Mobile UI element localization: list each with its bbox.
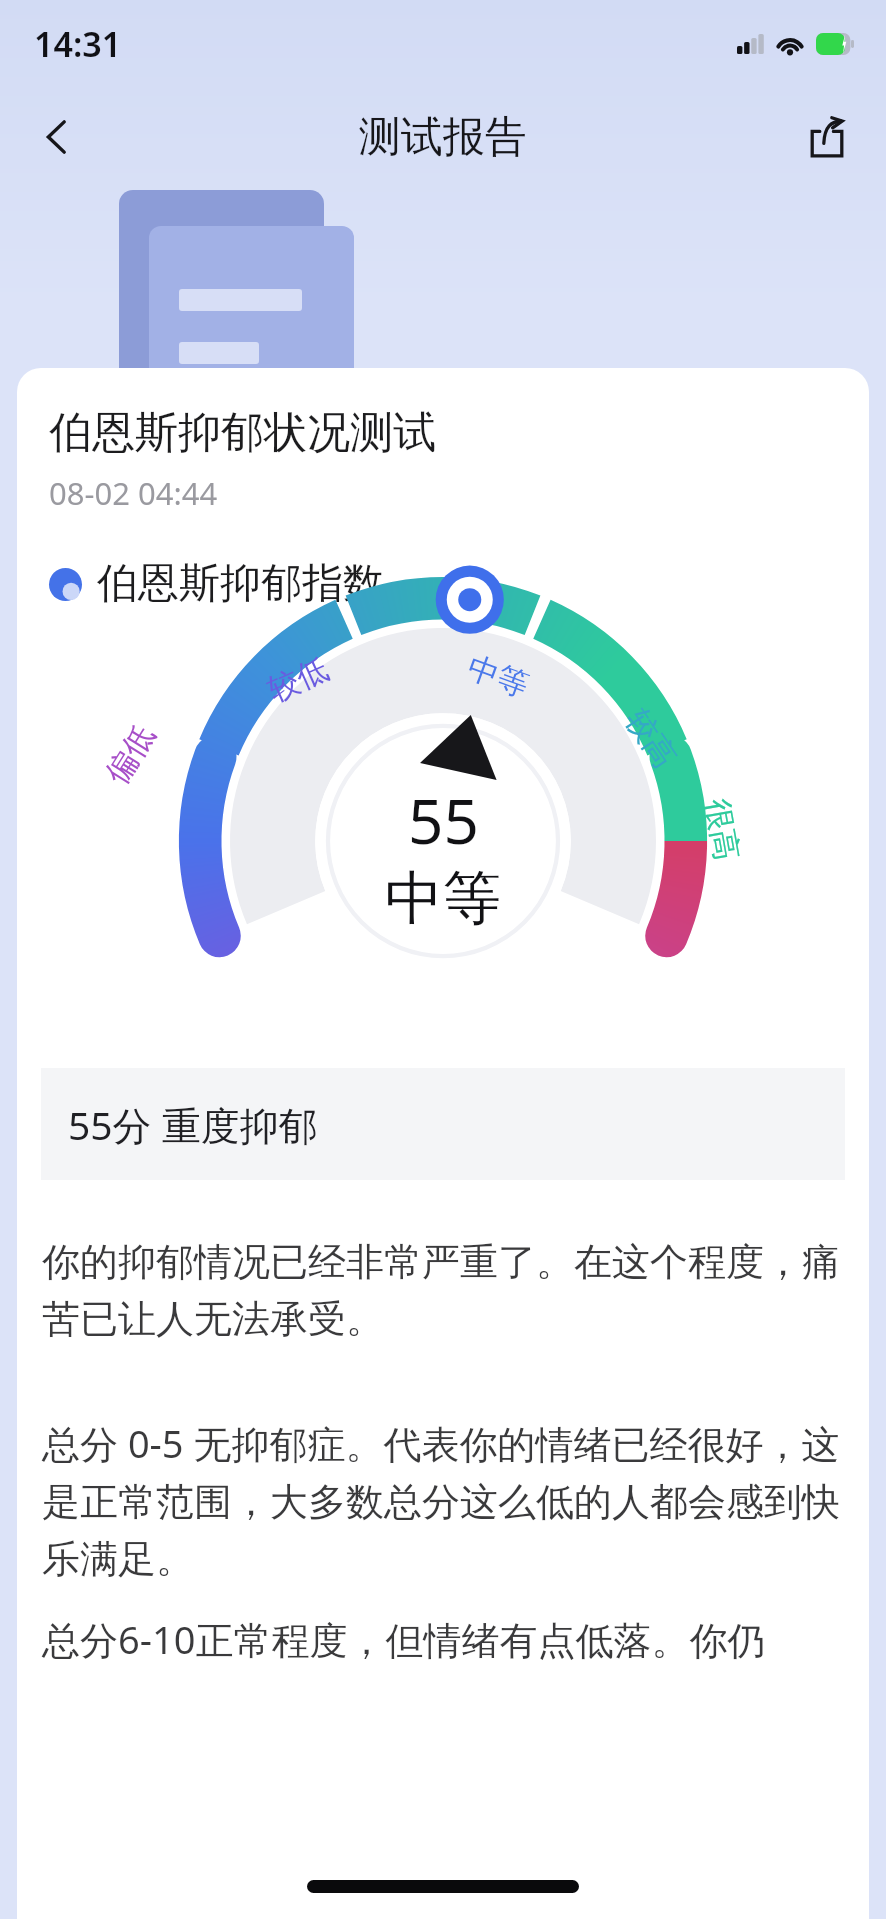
staticText: 很高 bbox=[697, 796, 747, 863]
staticText: 55分 重度抑郁 bbox=[68, 1098, 318, 1151]
staticText: 较高 bbox=[617, 702, 684, 775]
staticText: 较低 bbox=[262, 649, 334, 710]
staticText: 偏低 bbox=[97, 718, 163, 791]
staticText: 中等 bbox=[385, 862, 501, 935]
staticText: 55 bbox=[408, 778, 479, 862]
staticText: 总分 0-5 无抑郁症。代表你的情绪已经很好，这是正常范围，大多数总分这么低的人… bbox=[42, 1417, 844, 1583]
staticText: 测试报告 bbox=[359, 111, 527, 164]
staticText: 你的抑郁情况已经非常严重了。在这个程度，痛苦已让人无法承受。 bbox=[42, 1238, 844, 1343]
button[interactable]: Back bbox=[20, 100, 94, 174]
staticText: 总分6-10正常程度，但情绪有点低落。你仍 bbox=[42, 1613, 766, 1665]
button[interactable]: Share bbox=[790, 100, 864, 174]
staticText: 中等 bbox=[462, 648, 534, 705]
staticText: 08-02 04:44 bbox=[49, 472, 218, 514]
button[interactable]: 伯恩斯抑郁指数 bbox=[49, 558, 384, 610]
staticText: 伯恩斯抑郁指数 bbox=[97, 558, 384, 610]
staticText: 14:31 bbox=[34, 21, 122, 67]
staticText: 伯恩斯抑郁状况测试 bbox=[49, 406, 436, 460]
